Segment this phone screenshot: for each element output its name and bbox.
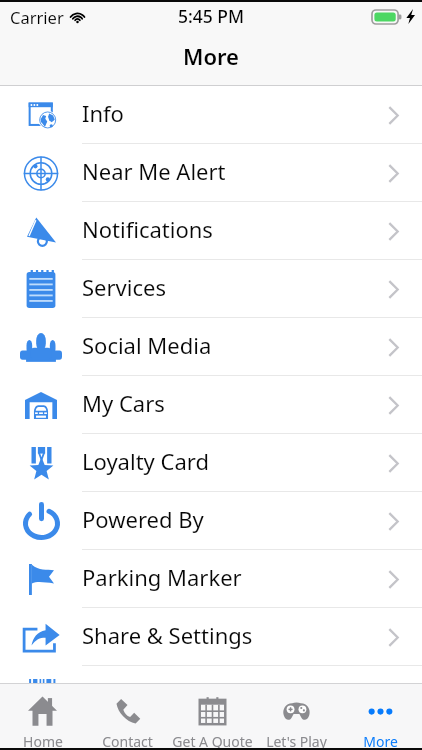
staticText: Parking Marker (82, 562, 242, 592)
staticText: 5:45 PM (178, 4, 245, 28)
button[interactable]: Near Me Alert (0, 144, 422, 202)
staticText: Share & Settings (82, 620, 253, 650)
staticText: My Cars (82, 388, 165, 418)
button[interactable]: More (338, 684, 422, 748)
button[interactable]: Notifications (0, 202, 422, 260)
staticText: Info (82, 98, 124, 128)
button[interactable]: Let's Play (254, 684, 338, 748)
button[interactable]: Get A Quote (170, 684, 254, 748)
staticText: Loyalty Card (82, 446, 209, 476)
button[interactable]: Services (0, 260, 422, 318)
staticText: Contact (102, 732, 153, 748)
staticText: Services (82, 272, 166, 302)
staticText: Let's Play (266, 732, 327, 748)
button[interactable]: Home (0, 684, 85, 748)
button[interactable]: Loyalty Barcode (0, 666, 422, 724)
button[interactable]: Share & Settings (0, 608, 422, 666)
button[interactable]: Loyalty Card (0, 434, 422, 492)
staticText: Social Media (82, 330, 212, 360)
staticText: Get A Quote (172, 732, 253, 748)
staticText: More (183, 41, 239, 71)
staticText: Notifications (82, 214, 213, 244)
staticText: Loyalty Barcode (82, 678, 246, 708)
staticText: Powered By (82, 504, 204, 534)
button[interactable]: Parking Marker (0, 550, 422, 608)
staticText: Near Me Alert (82, 156, 226, 186)
staticText: More (363, 732, 398, 748)
staticText: Home (23, 732, 63, 748)
staticText: Carrier (10, 6, 64, 28)
button[interactable]: My Cars (0, 376, 422, 434)
button[interactable]: Powered By (0, 492, 422, 550)
button[interactable]: Contact (85, 684, 170, 748)
button[interactable]: Social Media (0, 318, 422, 376)
button[interactable]: Info (0, 86, 422, 144)
